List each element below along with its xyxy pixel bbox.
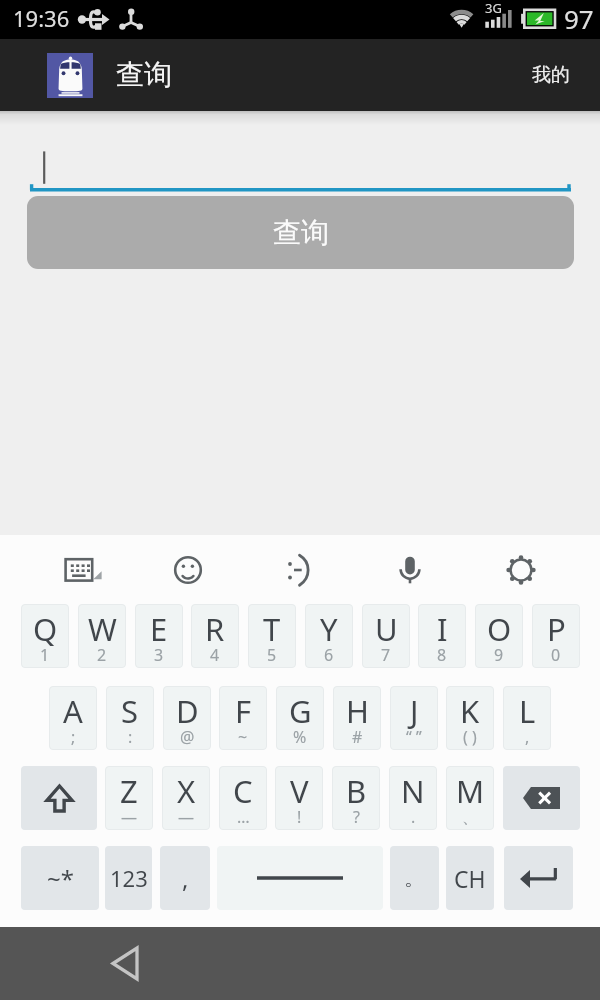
staticText: ( ) (463, 726, 477, 748)
staticText: . (411, 806, 416, 828)
button[interactable]: emoji (164, 546, 212, 594)
staticText: P (547, 608, 566, 650)
staticText: K (460, 690, 480, 732)
button[interactable]: Space (217, 846, 383, 910)
staticText: I (437, 608, 448, 650)
staticText: 6 (324, 644, 334, 666)
button[interactable]: mic (386, 546, 434, 594)
staticText: 8 (437, 644, 447, 666)
button[interactable]: N (389, 766, 437, 830)
staticText: — (121, 806, 138, 828)
button[interactable]: Shift (21, 766, 97, 830)
button[interactable]: Delete (503, 766, 580, 830)
staticText: F (235, 690, 252, 732)
staticText: , (525, 726, 530, 748)
staticText: Z (120, 770, 138, 812)
staticText: @ (180, 726, 195, 748)
button[interactable]: V (275, 766, 323, 830)
button[interactable]: ~* (21, 846, 99, 910)
button[interactable]: Q (21, 604, 69, 668)
staticText: 9 (494, 644, 504, 666)
button[interactable]: F (219, 686, 267, 750)
button[interactable]: W (78, 604, 126, 668)
staticText: 123 (110, 863, 148, 893)
staticText: 7 (381, 644, 391, 666)
staticText: ? (353, 806, 360, 828)
button[interactable]: P (532, 604, 580, 668)
staticText: X (177, 770, 196, 812)
staticText: 5 (267, 644, 277, 666)
staticText: — (178, 806, 195, 828)
staticText: 查询 (273, 215, 329, 250)
button[interactable]: , (160, 846, 210, 910)
button[interactable]: keyboard (56, 546, 104, 594)
staticText: # (352, 726, 363, 748)
staticText: W (88, 608, 117, 650)
button[interactable]: M (446, 766, 494, 830)
button[interactable]: smiley (277, 546, 325, 594)
button[interactable]: L (503, 686, 551, 750)
button[interactable]: H (333, 686, 381, 750)
button[interactable]: Z (105, 766, 153, 830)
button[interactable]: 查询 (27, 196, 574, 269)
staticText: : (128, 726, 133, 748)
button[interactable]: O (475, 604, 523, 668)
staticText: V (290, 770, 309, 812)
button[interactable]: 。 (390, 846, 439, 910)
button[interactable]: T (248, 604, 296, 668)
button[interactable]: S (106, 686, 154, 750)
staticText: CH (454, 863, 486, 894)
staticText: B (346, 770, 367, 812)
staticText: U (375, 608, 398, 650)
button[interactable]: R (191, 604, 239, 668)
staticText: ! (297, 806, 302, 828)
staticText: ~* (47, 862, 74, 895)
staticText: 0 (551, 644, 561, 666)
button[interactable]: C (219, 766, 267, 830)
button[interactable]: B (332, 766, 380, 830)
button[interactable]: settings (497, 546, 545, 594)
button[interactable]: X (162, 766, 210, 830)
button[interactable]: 我的 (523, 55, 579, 95)
staticText: 3 (154, 644, 164, 666)
staticText: Y (320, 608, 338, 650)
button[interactable]: A (49, 686, 97, 750)
staticText: A (63, 690, 83, 732)
staticText: L (519, 690, 536, 732)
staticText: T (263, 608, 281, 650)
button[interactable]: G (276, 686, 324, 750)
staticText: N (401, 770, 425, 812)
staticText: 查询 (116, 57, 172, 92)
button[interactable]: Back (100, 938, 150, 988)
staticText: “ ” (406, 726, 422, 748)
button[interactable]: K (446, 686, 494, 750)
button[interactable]: J (390, 686, 438, 750)
staticText: S (121, 690, 139, 732)
button[interactable]: D (163, 686, 211, 750)
button[interactable]: CH (446, 846, 494, 910)
staticText: % (293, 726, 307, 748)
staticText: C (233, 770, 253, 812)
staticText: 1 (40, 644, 50, 666)
staticText: 2 (97, 644, 107, 666)
staticText: R (205, 608, 225, 650)
staticText: D (176, 690, 199, 732)
staticText: H (346, 690, 369, 732)
button[interactable]: Enter (504, 846, 573, 910)
staticText: ; (71, 726, 76, 748)
staticText: 4 (210, 644, 220, 666)
button[interactable]: U (362, 604, 410, 668)
button[interactable]: I (418, 604, 466, 668)
button[interactable]: 123 (105, 846, 152, 910)
staticText: ~ (238, 726, 248, 748)
staticText: , (182, 862, 189, 895)
button[interactable]: Y (305, 604, 353, 668)
staticText: J (410, 690, 419, 732)
staticText: 我的 (532, 63, 570, 87)
staticText: M (456, 770, 485, 812)
staticText: … (237, 806, 250, 828)
button[interactable]: E (135, 604, 183, 668)
staticText: 。 (404, 865, 425, 891)
staticText: 19:36 (13, 3, 70, 33)
staticText: G (289, 690, 312, 732)
